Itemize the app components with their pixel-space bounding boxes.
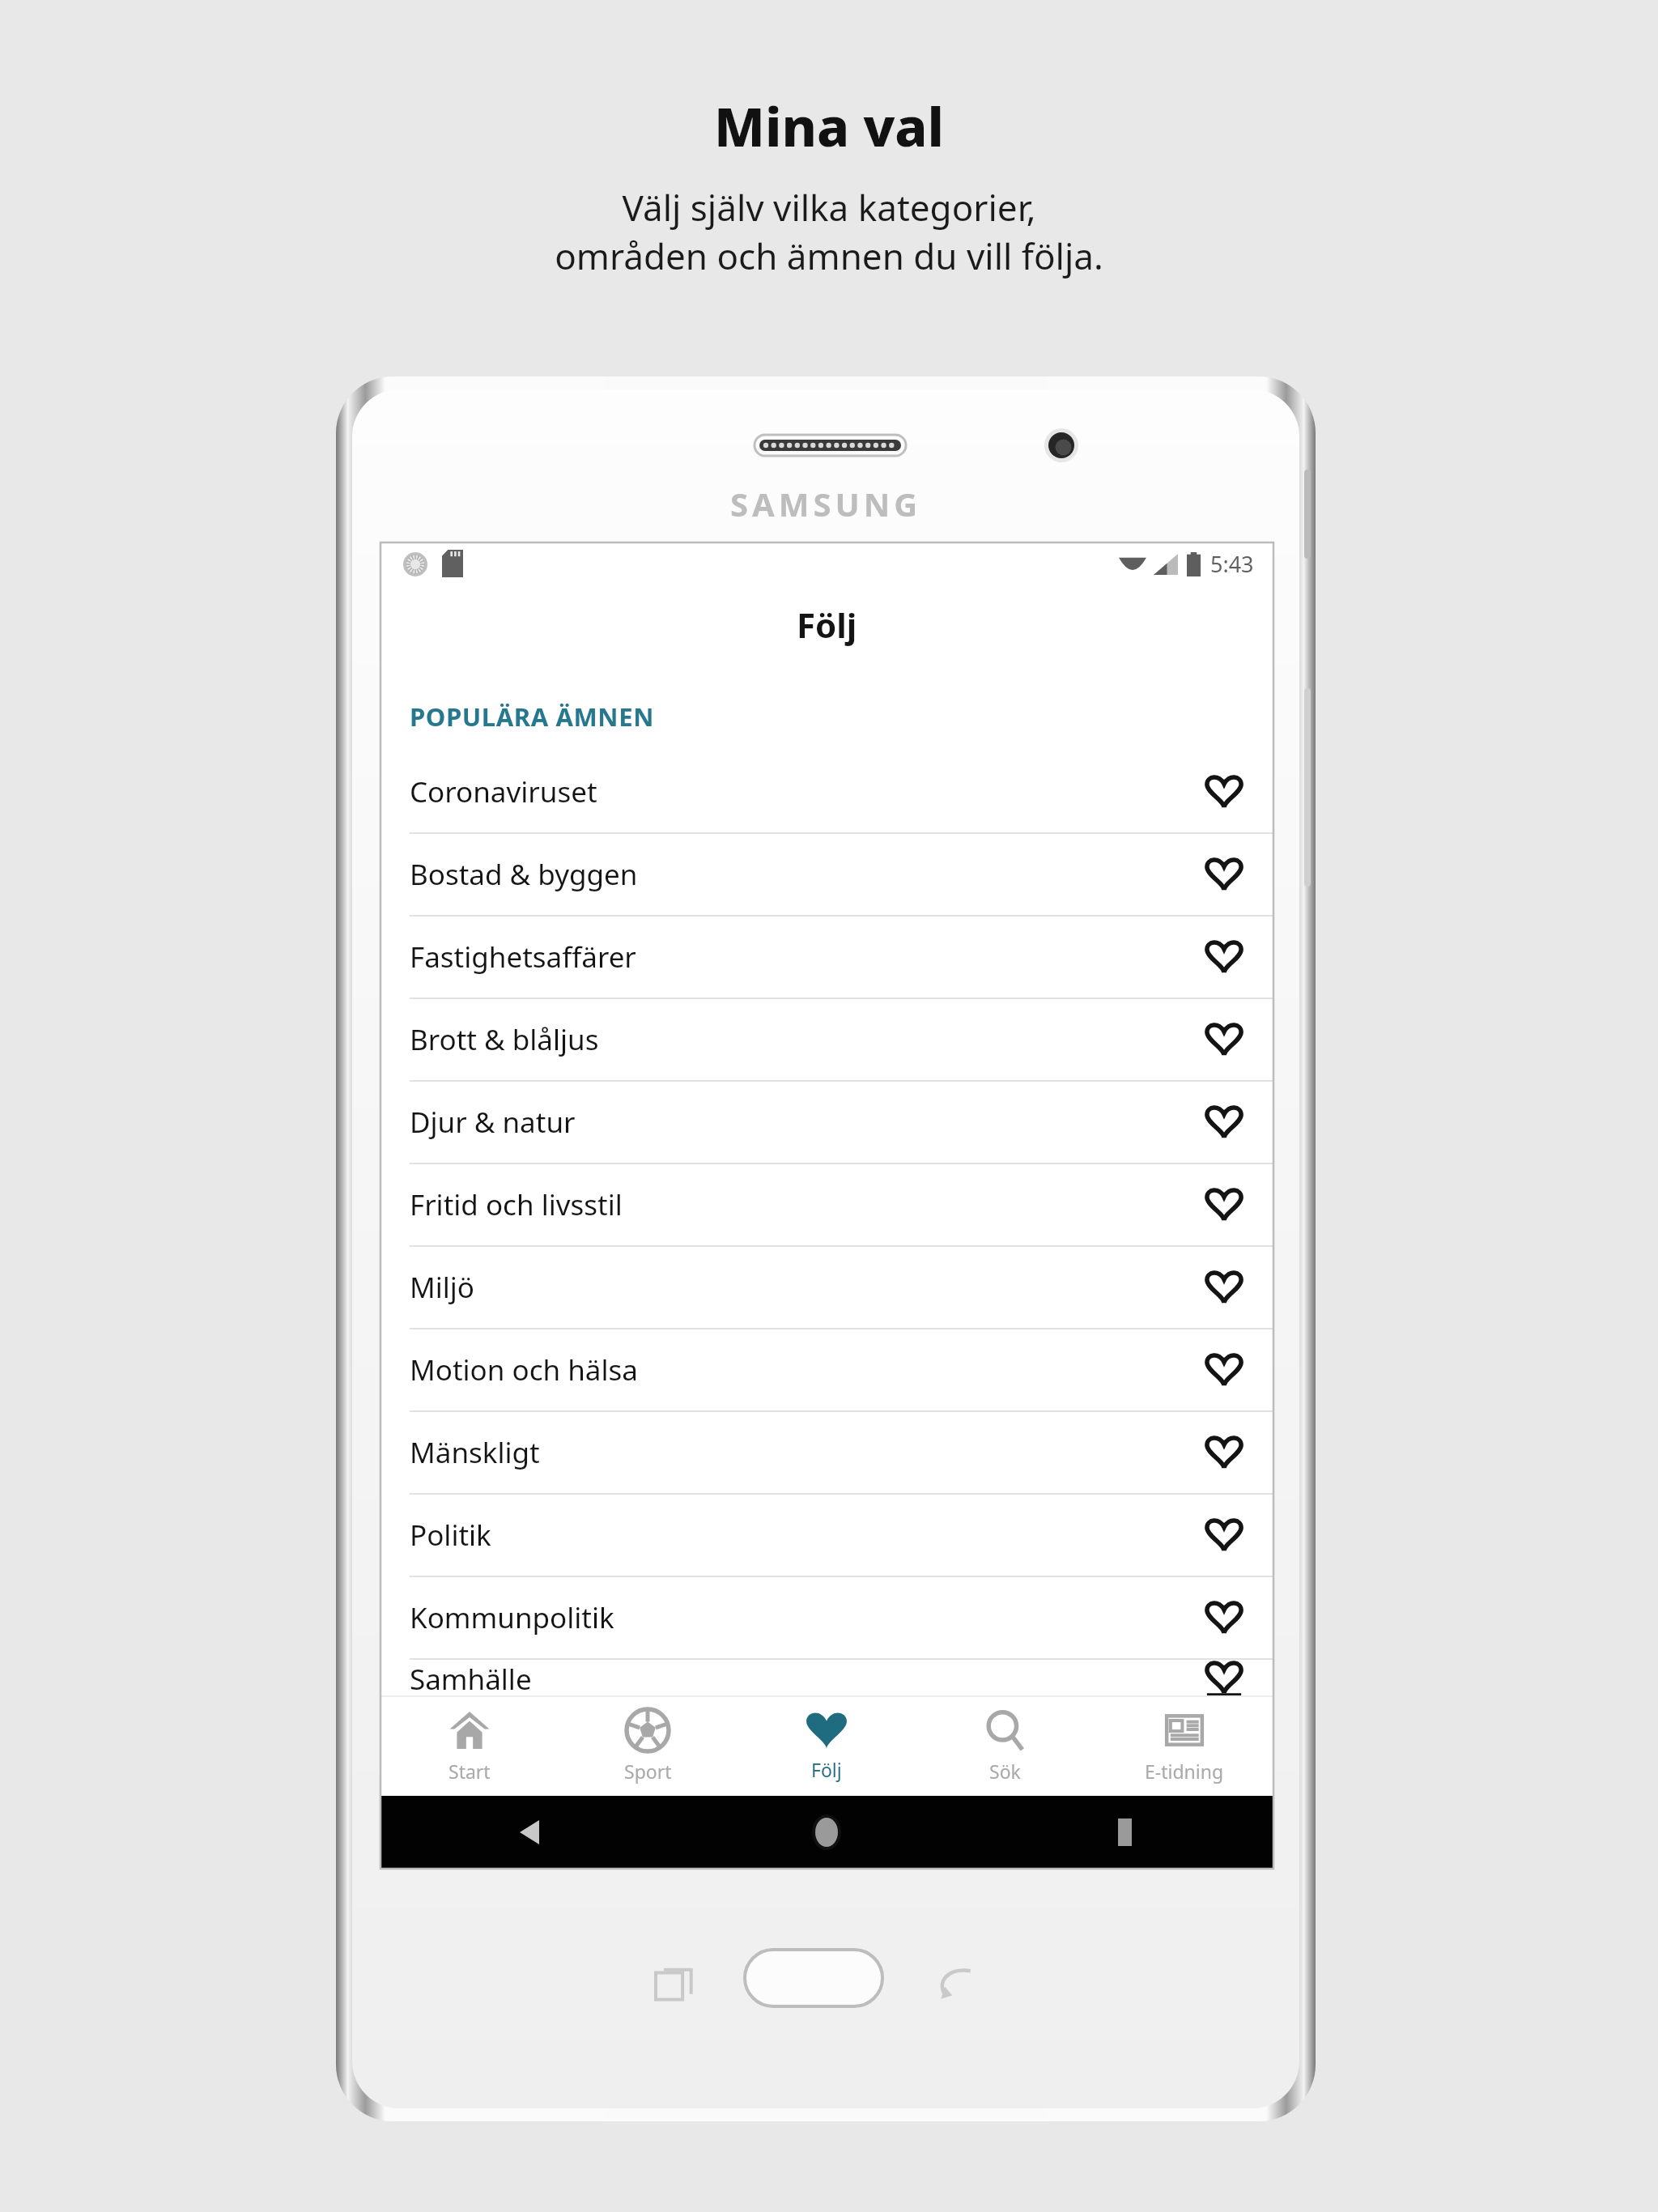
staticText: Mänskligt <box>410 1433 1199 1472</box>
button[interactable]: Djur & natur <box>380 1082 1273 1163</box>
staticText: Sport <box>624 1759 672 1784</box>
staticText: Start <box>449 1759 491 1784</box>
staticText: Kommunpolitik <box>410 1598 1199 1637</box>
staticText: SAMSUNG <box>730 482 922 525</box>
button[interactable]: Följ Djur & natur <box>1199 1097 1249 1147</box>
button[interactable]: Politik <box>380 1495 1273 1576</box>
button[interactable]: Följ Fritid och livsstil <box>1199 1180 1249 1230</box>
staticText: Coronaviruset <box>410 772 1199 811</box>
button[interactable]: Följ <box>737 1697 916 1796</box>
staticText: Bostad & byggen <box>410 855 1199 894</box>
staticText: Samhälle <box>410 1660 1199 1695</box>
button[interactable]: Följ Miljö <box>1199 1262 1249 1312</box>
button[interactable]: Coronaviruset <box>380 751 1273 832</box>
staticText: Mina val <box>714 89 944 162</box>
staticText: Följ <box>811 1757 842 1782</box>
button[interactable]: Följ Coronaviruset <box>1199 767 1249 817</box>
button[interactable]: Bostad & byggen <box>380 834 1273 915</box>
staticText: Djur & natur <box>410 1103 1199 1142</box>
button[interactable]: Följ Fastighetsaffärer <box>1199 932 1249 982</box>
staticText: Välj själv vilka kategorier, områden och… <box>555 183 1103 280</box>
staticText: Miljö <box>410 1268 1199 1307</box>
button[interactable]: Samhälle <box>380 1660 1273 1695</box>
button[interactable]: Följ Brott & blåljus <box>1199 1015 1249 1065</box>
button[interactable]: Sök <box>916 1697 1095 1796</box>
button[interactable]: Recents <box>1107 1814 1142 1850</box>
button[interactable]: Mänskligt <box>380 1412 1273 1493</box>
button[interactable]: Fastighetsaffärer <box>380 917 1273 998</box>
button[interactable]: Miljö <box>380 1247 1273 1328</box>
button[interactable]: Följ Bostad & byggen <box>1199 849 1249 900</box>
button[interactable]: Back <box>512 1814 547 1850</box>
button[interactable]: Sport <box>559 1697 737 1796</box>
button[interactable]: Följ Politik <box>1199 1510 1249 1560</box>
staticText: Följ <box>797 602 857 648</box>
staticText: Motion och hälsa <box>410 1351 1199 1389</box>
staticText: Fastighetsaffärer <box>410 938 1199 976</box>
button[interactable]: Motion och hälsa <box>380 1329 1273 1410</box>
staticText: POPULÄRA ÄMNEN <box>410 700 654 734</box>
button[interactable]: Följ Samhälle <box>1199 1660 1249 1695</box>
button[interactable]: Följ Kommunpolitik <box>1199 1593 1249 1643</box>
staticText: Fritid och livsstil <box>410 1185 1199 1224</box>
button[interactable]: Start <box>380 1697 559 1796</box>
staticText: E-tidning <box>1145 1759 1224 1784</box>
staticText: Brott & blåljus <box>410 1020 1199 1059</box>
button[interactable]: Kommunpolitik <box>380 1577 1273 1658</box>
button[interactable]: Home <box>807 1813 846 1852</box>
staticText: Sök <box>989 1759 1021 1784</box>
button[interactable]: Följ Mänskligt <box>1199 1427 1249 1478</box>
button[interactable]: E-tidning <box>1095 1697 1273 1796</box>
staticText: Politik <box>410 1516 1199 1555</box>
staticText: 5:43 <box>1210 549 1254 579</box>
button[interactable]: Följ Motion och hälsa <box>1199 1345 1249 1395</box>
button[interactable]: Fritid och livsstil <box>380 1164 1273 1245</box>
button[interactable]: Brott & blåljus <box>380 999 1273 1080</box>
